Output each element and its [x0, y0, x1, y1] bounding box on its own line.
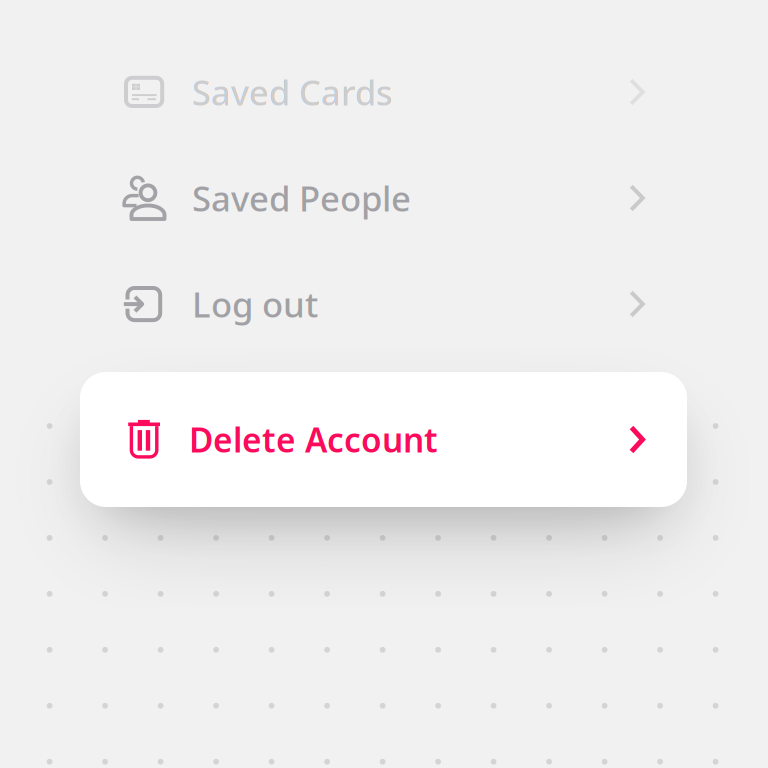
- button[interactable]: Saved People: [0, 163, 768, 233]
- button[interactable]: Delete Account: [80, 372, 687, 507]
- staticText: Saved Cards: [192, 69, 393, 115]
- button[interactable]: Saved Cards: [0, 57, 768, 127]
- staticText: Saved People: [192, 175, 411, 221]
- staticText: Log out: [192, 281, 318, 327]
- staticText: Delete Account: [189, 417, 438, 462]
- button[interactable]: Log out: [0, 269, 768, 339]
